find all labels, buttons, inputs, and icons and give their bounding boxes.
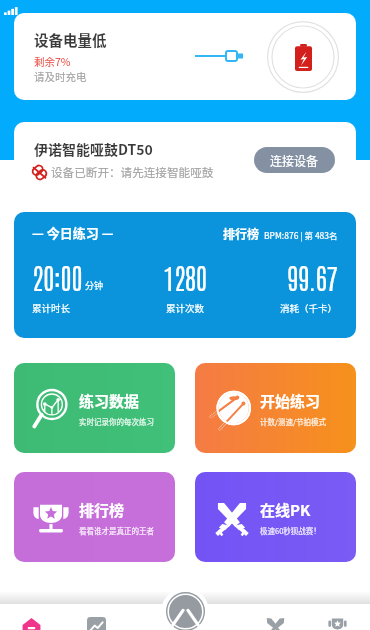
button[interactable]: Battle bbox=[258, 604, 292, 630]
staticText: — 今日练习 — bbox=[32, 223, 114, 242]
staticText: 设备电量低 bbox=[34, 29, 107, 50]
staticText: 累计时长 bbox=[32, 301, 71, 315]
button[interactable]: Start practice bbox=[161, 588, 209, 630]
staticText: 练习数据 bbox=[79, 390, 140, 412]
staticText: 99.67 bbox=[287, 259, 338, 295]
button[interactable]: 开始练习 bbox=[195, 363, 356, 453]
staticText: 实时记录你的每次练习 bbox=[79, 416, 154, 427]
staticText: 在线PK bbox=[260, 499, 311, 521]
staticText: 请及时充电 bbox=[34, 69, 87, 84]
button[interactable]: Ranking bbox=[320, 604, 354, 630]
button[interactable]: 排行榜 bbox=[14, 472, 175, 562]
staticText: 计数/测速/节拍模式 bbox=[260, 416, 326, 427]
button[interactable]: 设备电量低 bbox=[14, 13, 356, 100]
staticText: 设备已断开：请先连接智能哑鼓 bbox=[51, 164, 214, 181]
staticText: 排行榜 bbox=[223, 225, 260, 242]
button[interactable]: 连接设备 bbox=[254, 147, 335, 173]
button[interactable]: — 今日练习 — bbox=[14, 212, 356, 338]
staticText: 消耗（千卡） bbox=[280, 301, 338, 315]
staticText: BPM:876 | 第 483名 bbox=[264, 229, 338, 241]
staticText: 分钟 bbox=[85, 279, 104, 292]
staticText: 累计次数 bbox=[166, 301, 205, 315]
staticText: 20:00 bbox=[32, 259, 83, 295]
staticText: 排行榜 bbox=[79, 499, 125, 521]
staticText: 剩余7% bbox=[34, 54, 71, 69]
staticText: 1280 bbox=[163, 259, 207, 295]
button[interactable]: 伊诺智能哑鼓DT50 bbox=[14, 122, 356, 198]
button[interactable]: 练习数据 bbox=[14, 363, 175, 453]
button[interactable]: 在线PK bbox=[195, 472, 356, 562]
button[interactable]: Statistics bbox=[79, 604, 113, 630]
staticText: 伊诺智能哑鼓DT50 bbox=[34, 139, 153, 159]
staticText: 极速60秒狈战赛！ bbox=[260, 525, 321, 536]
staticText: 看看谁才是真正的王者 bbox=[79, 525, 154, 536]
staticText: 开始练习 bbox=[260, 390, 321, 412]
staticText: 连接设备 bbox=[270, 152, 319, 169]
button[interactable]: Home bbox=[14, 604, 48, 630]
